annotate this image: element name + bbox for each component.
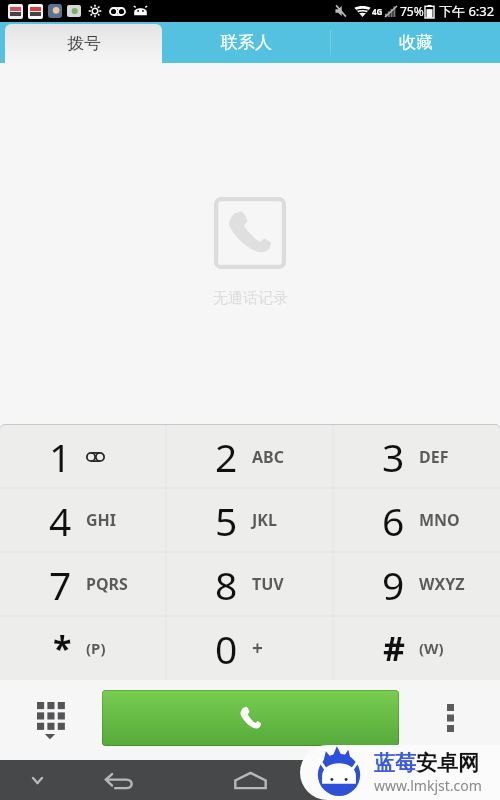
staticText: 收藏 (399, 32, 433, 53)
staticText: 下午 6:32 (439, 2, 495, 20)
staticText: TUV (252, 573, 284, 595)
button[interactable]: 5 (166, 488, 333, 552)
button[interactable]: Home (226, 760, 274, 800)
staticText: 7 (49, 558, 72, 611)
staticText: 拨号 (67, 33, 101, 54)
button[interactable]: 0 (166, 616, 333, 680)
staticText: 2 (215, 430, 238, 483)
button[interactable]: 4 (0, 488, 166, 552)
staticText: 8 (215, 558, 238, 611)
button[interactable]: # (333, 616, 500, 680)
staticText: 无通话记录 (213, 289, 288, 308)
button[interactable]: Hide keyboard (13, 760, 61, 800)
staticText: 75% (400, 3, 424, 19)
staticText: GHI (86, 509, 117, 531)
staticText: MNO (419, 509, 460, 531)
staticText: 安卓网 (416, 750, 479, 776)
button[interactable]: 9 (333, 552, 500, 616)
button[interactable]: 拨号 (5, 24, 162, 63)
button[interactable]: * (0, 616, 166, 680)
staticText: 联系人 (221, 32, 272, 53)
staticText: * (53, 625, 72, 671)
button[interactable]: 2 (166, 425, 333, 488)
button[interactable]: Call (102, 690, 399, 746)
staticText: (P) (86, 638, 106, 658)
staticText: 蓝莓 (374, 750, 416, 776)
staticText: (W) (419, 638, 444, 658)
staticText: 4G (372, 6, 383, 17)
staticText: JKL (252, 509, 277, 531)
button[interactable]: 1 (0, 425, 166, 488)
button[interactable]: 7 (0, 552, 166, 616)
staticText: 5 (215, 494, 238, 547)
staticText: 3 (382, 430, 405, 483)
button[interactable]: Back (95, 760, 143, 800)
staticText: # (383, 625, 405, 671)
button[interactable]: 8 (166, 552, 333, 616)
staticText: WXYZ (419, 573, 465, 595)
button[interactable]: 收藏 (331, 22, 500, 63)
staticText: + (252, 635, 263, 661)
staticText: 1 (49, 430, 72, 483)
button[interactable]: 6 (333, 488, 500, 552)
staticText: 0 (215, 622, 238, 675)
staticText: ABC (252, 446, 284, 468)
staticText: www.lmkjst.com (374, 776, 482, 795)
staticText: PQRS (86, 573, 128, 595)
staticText: 9 (382, 558, 405, 611)
button[interactable]: 联系人 (162, 22, 330, 63)
staticText: DEF (419, 446, 449, 468)
staticText: 6 (382, 494, 405, 547)
button[interactable]: More options (422, 690, 478, 746)
button[interactable]: Show dialpad (22, 690, 78, 746)
staticText: 4 (49, 494, 72, 547)
button[interactable]: 3 (333, 425, 500, 488)
